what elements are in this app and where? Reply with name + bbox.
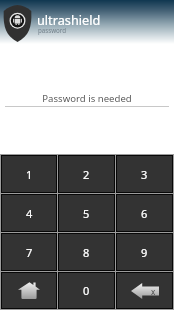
staticText: 6: [141, 206, 148, 221]
staticText: 9: [141, 245, 148, 260]
staticText: 5: [83, 206, 90, 221]
staticText: x: [151, 286, 156, 297]
button[interactable]: 7: [2, 234, 56, 270]
button[interactable]: 0: [59, 273, 114, 308]
staticText: Password is needed: [0, 92, 174, 105]
staticText: 7: [26, 245, 33, 260]
staticText: 8: [83, 245, 90, 260]
button[interactable]: 5: [59, 195, 114, 231]
button[interactable]: 6: [117, 195, 172, 231]
staticText: 4: [26, 206, 33, 221]
button[interactable]: 9: [117, 234, 172, 270]
staticText: 3: [141, 167, 148, 182]
staticText: 1: [26, 167, 33, 182]
button[interactable]: Home: [2, 273, 56, 308]
button[interactable]: 3: [117, 156, 172, 192]
button[interactable]: 1: [2, 156, 56, 192]
button[interactable]: 2: [59, 156, 114, 192]
button[interactable]: 4: [2, 195, 56, 231]
staticText: 0: [83, 283, 90, 298]
button[interactable]: 8: [59, 234, 114, 270]
staticText: ultrashield: [37, 11, 101, 28]
staticText: password: [38, 26, 67, 34]
staticText: 2: [83, 167, 90, 182]
button[interactable]: Backspace: [117, 273, 172, 308]
